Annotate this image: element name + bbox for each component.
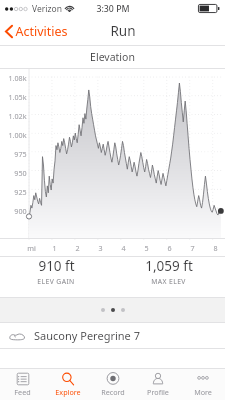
button[interactable] [101, 308, 105, 312]
staticText: Elevation [90, 50, 135, 64]
staticText: 2 [75, 243, 80, 253]
staticText: 1.05k [8, 92, 27, 102]
staticText: Saucony Peregrine 7 [34, 328, 140, 343]
staticText: 1,059 ft [145, 257, 193, 275]
staticText: More [194, 387, 212, 397]
staticText: 1 [52, 243, 57, 253]
staticText: 910 ft [38, 257, 75, 275]
staticText: 950 [14, 168, 27, 178]
staticText: ELEV GAIN [37, 277, 75, 286]
other: Record [106, 372, 120, 386]
staticText: Run [110, 22, 136, 40]
staticText: 925 [14, 187, 27, 197]
other: Feed [16, 372, 30, 386]
button[interactable] [111, 308, 115, 312]
staticText: Record [101, 387, 125, 397]
button[interactable]: Feed [0, 369, 45, 400]
staticText: 975 [14, 149, 27, 159]
button[interactable]: 910 ft [0, 257, 112, 286]
other: Profile [151, 372, 165, 386]
staticText: MAX ELEV [151, 277, 186, 286]
staticText: mi [27, 243, 36, 253]
staticText: Explore [55, 387, 81, 397]
button[interactable]: More [180, 369, 225, 400]
button[interactable] [121, 308, 125, 312]
staticText: 5 [144, 243, 149, 253]
staticText: 8 [213, 243, 218, 253]
other: Shoe [9, 331, 25, 341]
staticText: 3:30 PM [96, 3, 130, 15]
staticText: Verizon [32, 3, 62, 15]
button[interactable]: Activities [0, 19, 76, 44]
staticText: 7 [190, 243, 195, 253]
staticText: 6 [167, 243, 172, 253]
staticText: 3 [98, 243, 103, 253]
other: Explore [61, 372, 75, 386]
staticText: 4 [121, 243, 126, 253]
staticText: Feed [14, 387, 31, 397]
staticText: 1.02k [8, 111, 27, 121]
button[interactable]: 1,059 ft [112, 257, 225, 286]
button[interactable]: Shoe [0, 323, 225, 348]
staticText: Profile [147, 387, 169, 397]
staticText: 1.08k [8, 73, 27, 83]
button[interactable]: Record [90, 369, 135, 400]
staticText: 1.00k [8, 130, 27, 140]
other: More [196, 372, 210, 386]
button[interactable]: Explore [45, 369, 90, 400]
staticText: Activities [15, 23, 68, 40]
staticText: 900 [14, 206, 27, 216]
button[interactable]: Profile [135, 369, 180, 400]
